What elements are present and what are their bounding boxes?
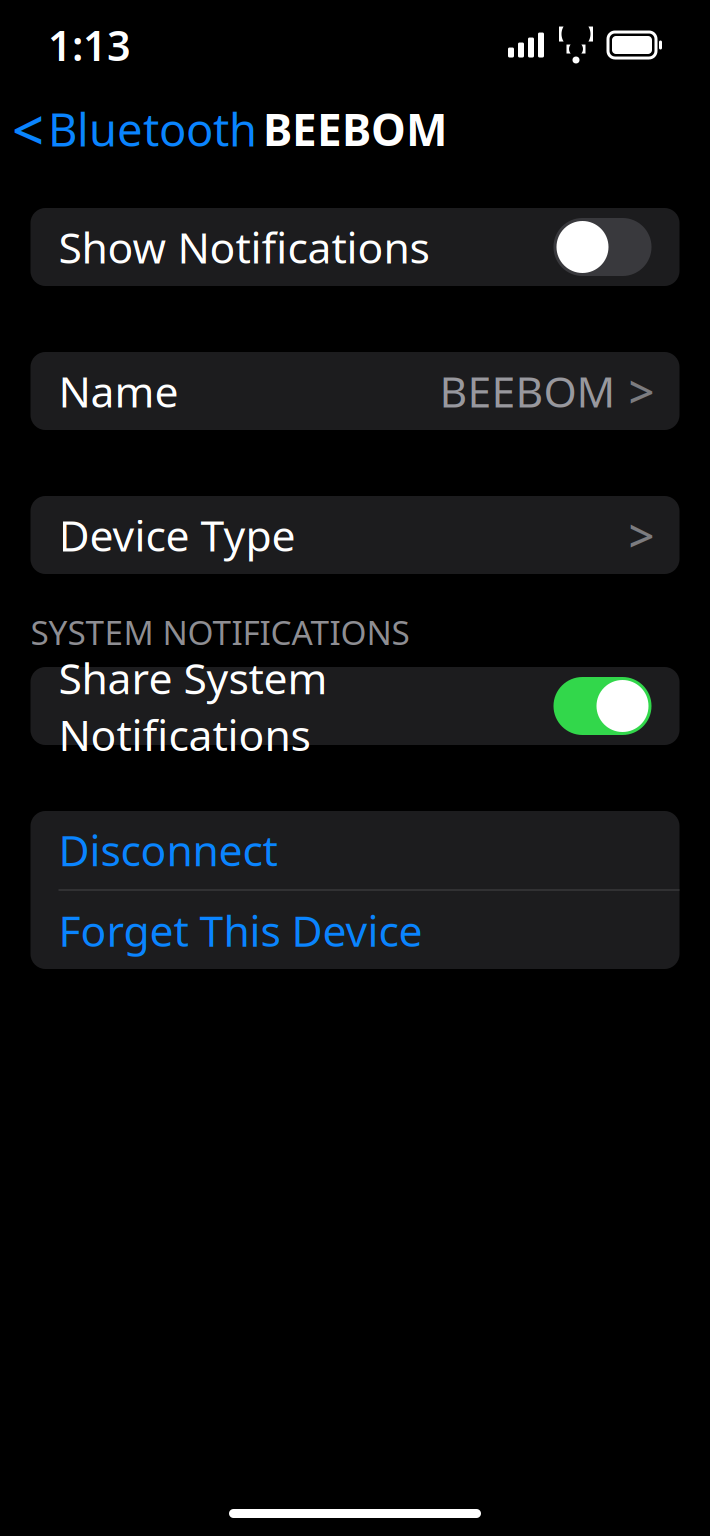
staticText: Share System Notifications — [58, 649, 327, 763]
staticText: Disconnect — [58, 821, 277, 878]
staticText: BEEBOM — [263, 100, 447, 158]
staticText: SYSTEM NOTIFICATIONS — [30, 610, 409, 654]
staticText: BEEBOM — [439, 363, 615, 419]
staticText: 1:13 — [48, 18, 131, 72]
staticText: < — [12, 92, 44, 166]
button[interactable]: Disconnect — [30, 810, 679, 889]
button[interactable]: Device Type — [30, 496, 679, 574]
staticText: > — [628, 361, 654, 421]
staticText: > — [628, 505, 654, 565]
button[interactable]: Share System Notifications — [30, 667, 679, 745]
staticText: Bluetooth — [48, 99, 257, 159]
staticText: Show Notifications — [58, 219, 429, 275]
button[interactable]: Show Notifications — [30, 208, 679, 286]
staticText: Name — [58, 363, 178, 419]
staticText: Forget This Device — [58, 902, 422, 959]
staticText: Device Type — [58, 507, 295, 563]
button[interactable]: < — [0, 100, 273, 158]
button[interactable]: Name — [30, 352, 679, 430]
button[interactable]: Forget This Device — [30, 891, 679, 970]
